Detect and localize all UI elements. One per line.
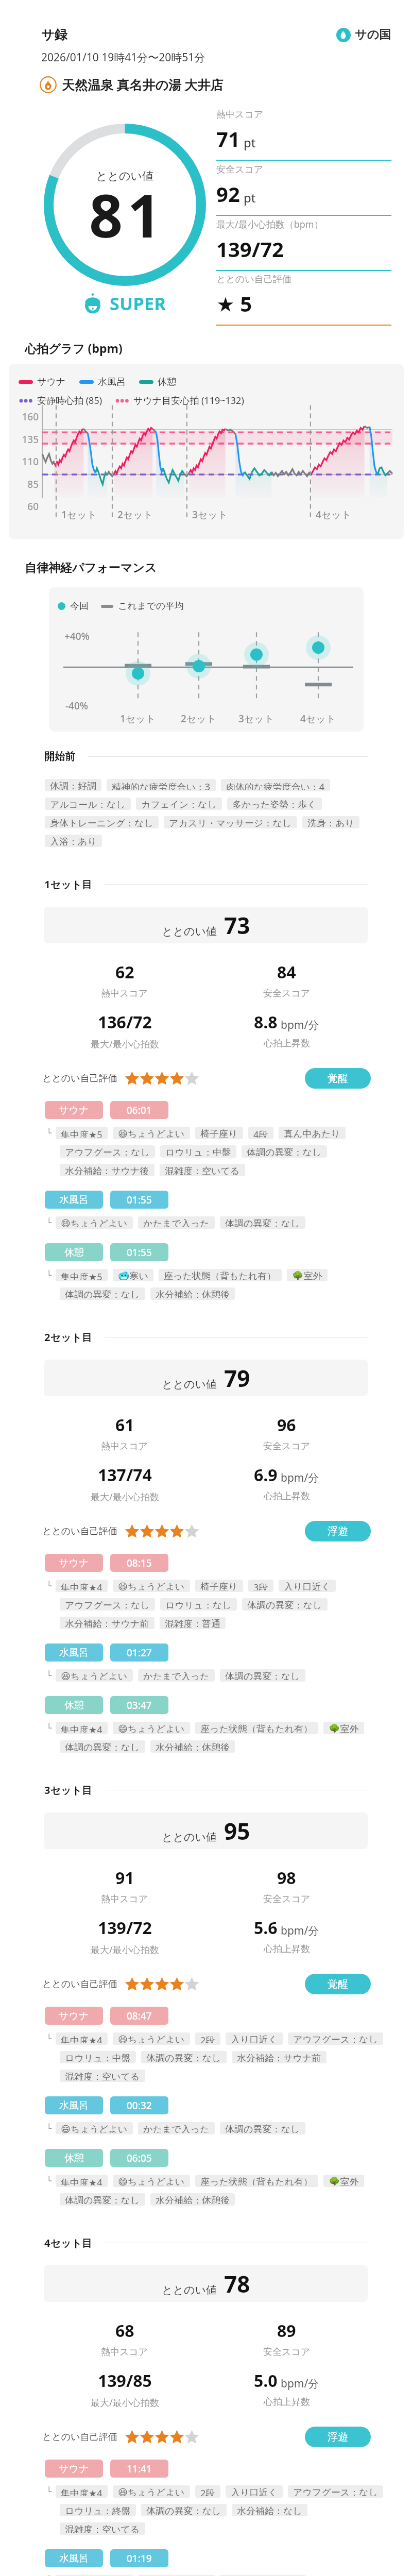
staticText: └	[46, 2033, 52, 2044]
staticText: ロウリュ：中盤	[165, 1147, 231, 1156]
staticText: 安全スコア	[216, 164, 264, 176]
staticText: 01:19	[127, 2552, 152, 2565]
staticText: 😄ちょうどよい	[118, 2176, 185, 2185]
staticText: サウナ	[59, 1557, 89, 1569]
button[interactable]: 覚醒	[305, 1974, 371, 1994]
staticText: 😆ちょうどよい	[61, 1671, 128, 1680]
staticText: 3セット目	[44, 1783, 92, 1797]
staticText: └	[46, 1128, 52, 1138]
staticText: ととのい値	[162, 925, 217, 938]
staticText: 😄ちょうどよい	[61, 1218, 128, 1227]
staticText: 1セット	[61, 508, 97, 521]
staticText: └	[46, 2176, 52, 2186]
staticText: 06:05	[127, 2151, 152, 2165]
staticText: 体調の異変：なし	[247, 1147, 322, 1156]
staticText: bpm/分	[281, 2376, 319, 2391]
staticText: アルコール：なし	[50, 799, 126, 808]
staticText: ととのい自己評価	[42, 1526, 117, 1537]
staticText: 3段	[253, 1581, 268, 1590]
button[interactable]: 浮遊	[305, 1521, 371, 1541]
staticText: 最大/最小心拍数（bpm）	[216, 218, 323, 231]
staticText: サウナ	[59, 2010, 89, 2022]
staticText: サウナ	[37, 376, 66, 388]
staticText: 熱中スコア	[216, 109, 264, 121]
staticText: 110	[9, 455, 39, 468]
staticText: 体調：好調	[50, 781, 96, 790]
staticText: 集中度★4	[61, 1723, 102, 1733]
staticText: アカスリ・マッサージ：なし	[169, 818, 292, 827]
staticText: 安全スコア	[263, 988, 311, 999]
staticText: pt	[244, 134, 256, 151]
staticText: 集中度★4	[61, 1581, 102, 1590]
staticText: 85	[9, 478, 39, 491]
staticText: 00:32	[127, 2099, 152, 2112]
staticText: 精神的な疲労度合い：3	[112, 781, 211, 790]
button[interactable]: 覚醒	[305, 1068, 371, 1089]
staticText: +40%	[64, 630, 90, 643]
staticText: 95	[224, 1816, 250, 1846]
staticText: 水分補給：休憩後	[156, 1289, 230, 1298]
staticText: 60	[9, 500, 39, 513]
staticText: 160	[9, 410, 39, 423]
staticText: 79	[224, 1363, 250, 1394]
staticText: 3セット	[192, 508, 228, 521]
staticText: 139/85	[98, 2369, 152, 2392]
staticText: 😆ちょうどよい	[118, 2034, 185, 2043]
staticText: ととのい自己評価	[42, 2431, 117, 2443]
staticText: 71	[216, 125, 240, 152]
staticText: 08:47	[127, 2009, 152, 2023]
staticText: 水風呂	[98, 376, 126, 388]
staticText: 体調の異変：なし	[146, 2053, 221, 2062]
staticText: 入り口近く	[231, 2034, 278, 2043]
staticText: 81	[89, 175, 166, 255]
staticText: 89	[277, 2319, 296, 2342]
staticText: 最大/最小心拍数	[91, 1038, 159, 1050]
staticText: -40%	[65, 699, 89, 713]
staticText: 体調の異変：なし	[225, 1671, 300, 1680]
staticText: 😄ちょうどよい	[118, 1723, 185, 1733]
staticText: 4セット	[316, 508, 352, 521]
staticText: 座った状態（背もたれ有）	[200, 2176, 313, 2185]
staticText: └	[46, 1581, 52, 1591]
staticText: 4セット目	[44, 2236, 92, 2250]
staticText: 休憩	[64, 2152, 84, 2164]
staticText: 混雑度：空いてる	[65, 2071, 140, 2080]
staticText: 心拍上昇数	[264, 2396, 310, 2408]
staticText: 安静時心拍 (85)	[37, 394, 102, 407]
staticText: 洗身：あり	[307, 818, 354, 827]
staticText: 安全スコア	[263, 1893, 311, 1905]
button[interactable]: 浮遊	[305, 2427, 371, 2447]
staticText: 68	[115, 2319, 134, 2342]
staticText: 水風呂	[59, 2099, 89, 2112]
staticText: 体調の異変：なし	[247, 1600, 322, 1609]
button[interactable]: 天然温泉 真名井の湯 大井店	[40, 76, 224, 93]
staticText: 3セット	[238, 712, 274, 725]
staticText: 84	[277, 961, 296, 984]
staticText: 心拍上昇数	[264, 1490, 310, 1502]
staticText: サウナ	[59, 2463, 89, 2475]
staticText: 開始前	[44, 750, 75, 763]
staticText: bpm/分	[281, 1018, 319, 1032]
button[interactable]: サの国	[336, 27, 391, 42]
staticText: bpm/分	[281, 1923, 319, 1938]
staticText: └	[46, 1217, 52, 1228]
staticText: 03:47	[127, 1699, 152, 1712]
staticText: ロウリュ：なし	[165, 1600, 232, 1609]
staticText: ととのい値	[162, 1831, 217, 1844]
staticText: 肉体的な疲労度合い：4	[226, 781, 325, 790]
staticText: 混雑度：普通	[165, 1618, 220, 1628]
staticText: 混雑度：空いてる	[65, 2524, 140, 2533]
staticText: └	[46, 2123, 52, 2133]
staticText: └	[46, 1670, 52, 1681]
staticText: 混雑度：空いてる	[165, 1165, 240, 1175]
staticText: サウナ目安心拍 (119~132)	[133, 394, 244, 407]
staticText: 水分補給：休憩後	[156, 2195, 230, 2204]
staticText: 62	[115, 961, 134, 984]
staticText: 1セット	[120, 712, 156, 725]
staticText: 01:55	[127, 1246, 152, 1259]
staticText: サ録	[41, 27, 67, 43]
staticText: 01:55	[127, 1193, 152, 1207]
staticText: 集中度★4	[61, 2034, 102, 2043]
staticText: └	[46, 2575, 52, 2576]
staticText: 集中度★5	[61, 1270, 102, 1280]
